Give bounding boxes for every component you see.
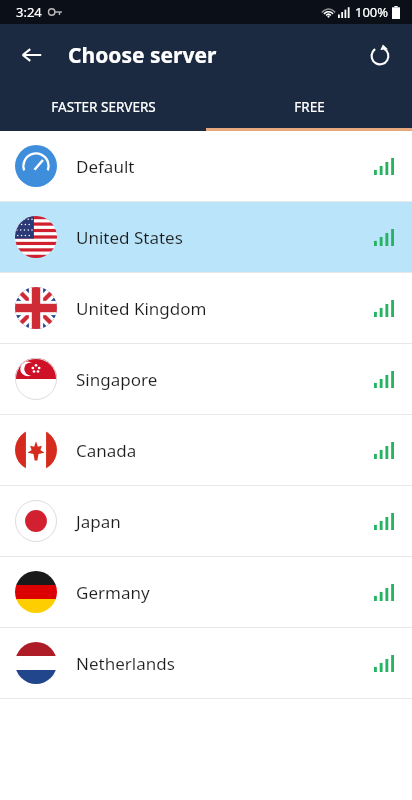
staticText: Japan [76,510,374,533]
staticText: 3:24 [16,3,42,21]
staticText: Canada [76,439,374,462]
staticText: Germany [76,581,374,604]
staticText: 100% [355,3,389,21]
button[interactable]: Default [0,131,412,201]
button[interactable]: United States [0,202,412,272]
staticText: United Kingdom [76,297,374,320]
button[interactable]: FREE [206,86,412,128]
button[interactable]: Canada [0,415,412,485]
staticText: Netherlands [76,652,374,675]
staticText: Default [76,155,374,178]
button[interactable]: Singapore [0,344,412,414]
staticText: FREE [294,98,325,116]
button[interactable]: Japan [0,486,412,556]
button[interactable]: Netherlands [0,628,412,698]
staticText: United States [76,226,374,249]
staticText: Singapore [76,368,374,391]
button[interactable]: Germany [0,557,412,627]
button[interactable]: United Kingdom [0,273,412,343]
staticText: Choose server [68,41,217,70]
staticText: FASTER SERVERS [51,98,156,116]
button[interactable]: Back [10,33,54,77]
button[interactable]: Refresh [358,33,402,77]
button[interactable]: FASTER SERVERS [0,86,206,128]
